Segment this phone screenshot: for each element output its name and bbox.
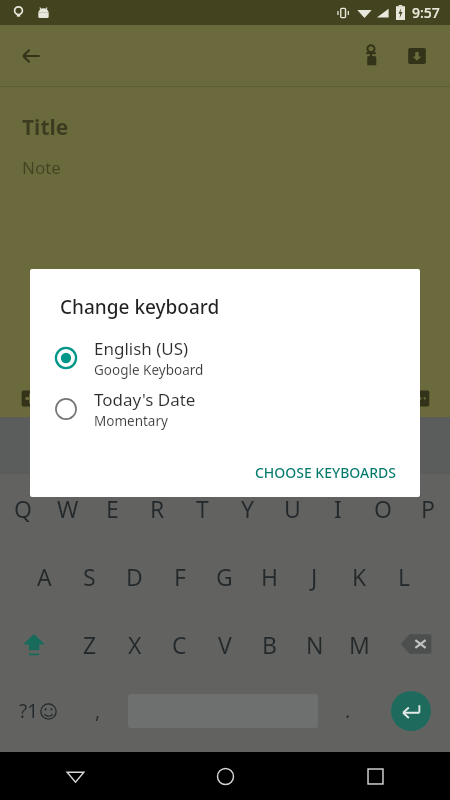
button[interactable]: L xyxy=(382,542,427,610)
button[interactable]: Q xyxy=(0,474,45,542)
staticText: J xyxy=(311,561,318,592)
staticText: F xyxy=(174,561,186,592)
button[interactable]: D xyxy=(112,542,157,610)
button[interactable]: Recent apps xyxy=(300,752,450,800)
button[interactable]: Today's Date xyxy=(30,383,420,434)
staticText: English (US) xyxy=(94,337,189,360)
button[interactable]: ?1 xyxy=(0,678,75,744)
button[interactable]: More options xyxy=(398,376,442,420)
staticText: . xyxy=(345,698,351,724)
button[interactable] xyxy=(121,678,325,744)
button[interactable]: Shift xyxy=(0,610,67,678)
staticText: B xyxy=(262,629,277,660)
button[interactable]: S xyxy=(67,542,112,610)
button[interactable]: B xyxy=(247,610,292,678)
staticText: W xyxy=(57,493,79,524)
staticText: ?1 xyxy=(19,698,39,724)
staticText: C xyxy=(172,629,187,660)
button[interactable]: J xyxy=(292,542,337,610)
staticText: Google Keyboard xyxy=(94,361,204,379)
staticText: T xyxy=(196,493,209,524)
staticText: Change keyboard xyxy=(60,294,220,320)
staticText: D xyxy=(126,561,143,592)
staticText: Q xyxy=(14,493,32,524)
staticText: S xyxy=(83,561,96,592)
staticText: U xyxy=(284,493,301,524)
button[interactable]: Y xyxy=(225,474,270,542)
staticText: Note xyxy=(22,156,61,179)
button[interactable]: K xyxy=(337,542,382,610)
staticText: H xyxy=(261,561,279,592)
button[interactable]: Pin note xyxy=(348,33,394,79)
staticText: L xyxy=(398,561,411,592)
button[interactable]: H xyxy=(247,542,292,610)
staticText: N xyxy=(306,629,324,660)
staticText: K xyxy=(352,561,367,592)
staticText: I xyxy=(334,493,342,524)
button[interactable]: X xyxy=(112,610,157,678)
button[interactable]: O xyxy=(360,474,405,542)
staticText: Momentary xyxy=(94,412,168,430)
staticText: G xyxy=(216,561,233,592)
staticText: M xyxy=(349,629,370,660)
staticText: A xyxy=(37,561,52,592)
button[interactable]: I xyxy=(315,474,360,542)
staticText: 9:57 xyxy=(412,3,440,22)
button[interactable]: Z xyxy=(67,610,112,678)
staticText: CHOOSE KEYBOARDS xyxy=(254,463,396,482)
button[interactable]: Archive xyxy=(394,33,440,79)
button[interactable]: G xyxy=(202,542,247,610)
staticText: O xyxy=(374,493,392,524)
staticText: Title xyxy=(22,113,69,142)
button[interactable]: Add xyxy=(8,376,52,420)
button[interactable]: Home xyxy=(150,752,300,800)
button[interactable]: N xyxy=(292,610,337,678)
button[interactable]: R xyxy=(135,474,180,542)
staticText: V xyxy=(218,629,232,660)
button[interactable]: E xyxy=(90,474,135,542)
button[interactable]: Back xyxy=(8,33,54,79)
button[interactable]: CHOOSE KEYBOARDS xyxy=(244,454,406,491)
staticText: Y xyxy=(241,493,255,524)
button[interactable]: English (US) xyxy=(30,332,420,383)
button[interactable]: V xyxy=(202,610,247,678)
button[interactable]: Backspace xyxy=(382,610,450,678)
staticText: Today's Date xyxy=(94,388,196,411)
button[interactable]: Enter xyxy=(371,678,450,744)
staticText: R xyxy=(150,493,165,524)
button[interactable]: C xyxy=(157,610,202,678)
staticText: E xyxy=(106,493,119,524)
button[interactable]: T xyxy=(180,474,225,542)
button[interactable]: F xyxy=(157,542,202,610)
staticText: P xyxy=(421,493,435,524)
button[interactable]: U xyxy=(270,474,315,542)
button[interactable]: P xyxy=(405,474,450,542)
staticText: , xyxy=(95,698,101,724)
button[interactable]: Back xyxy=(0,752,150,800)
button[interactable]: W xyxy=(45,474,90,542)
staticText: Z xyxy=(83,629,97,660)
button[interactable]: A xyxy=(22,542,67,610)
staticText: X xyxy=(128,629,142,660)
button[interactable]: M xyxy=(337,610,382,678)
